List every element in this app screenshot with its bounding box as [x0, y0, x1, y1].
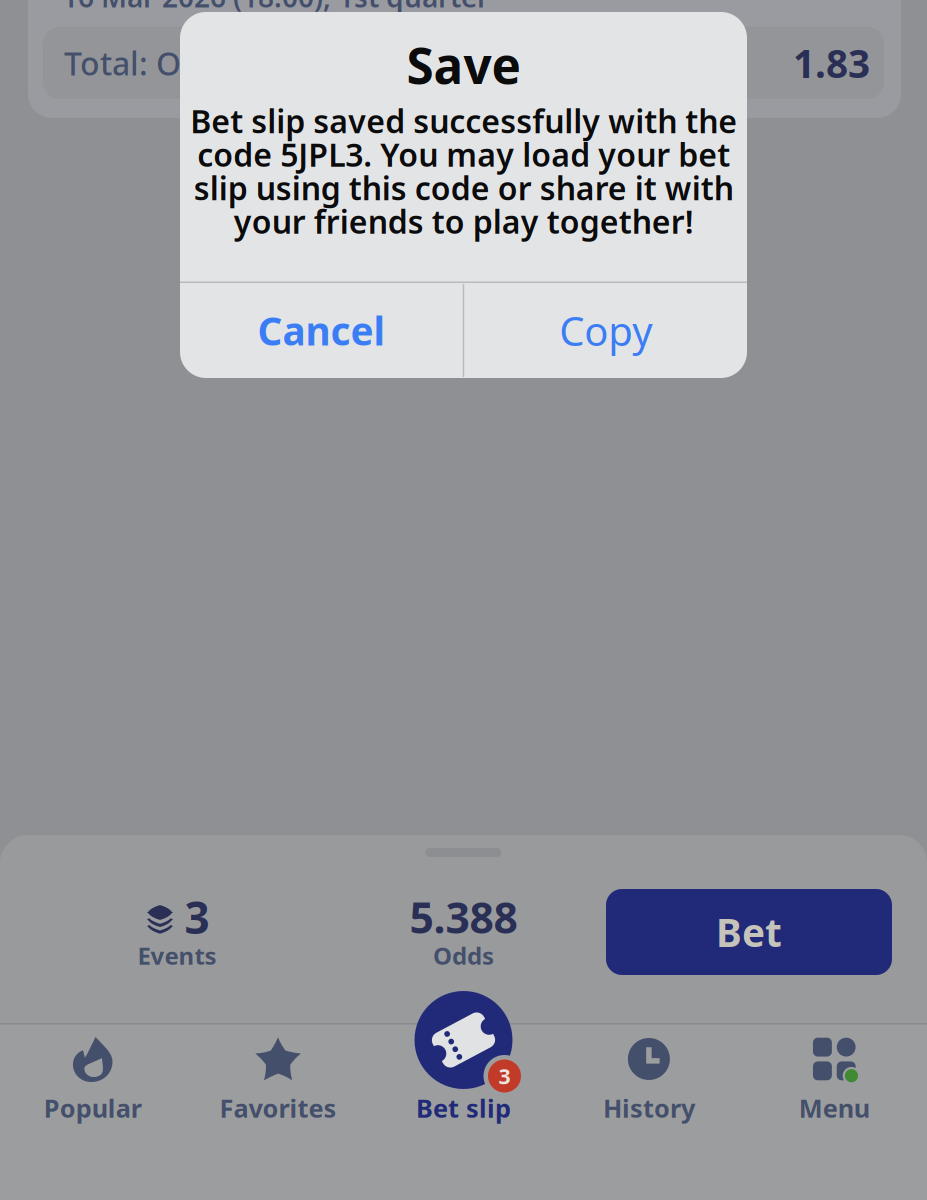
staticText: Menu: [799, 1091, 870, 1125]
button[interactable]: Cancel: [180, 283, 463, 378]
staticText: Odds: [433, 940, 494, 971]
staticText: Save: [406, 32, 520, 97]
button[interactable]: Bet: [606, 889, 892, 975]
button[interactable]: Popular: [0, 1023, 185, 1200]
button[interactable]: Menu: [742, 1023, 927, 1200]
staticText: Cancel: [257, 305, 385, 356]
staticText: 3: [184, 888, 209, 946]
button[interactable]: Bet slip: [371, 1023, 556, 1200]
button[interactable]: Favorites: [185, 1023, 371, 1200]
staticText: Bet: [716, 906, 782, 958]
button[interactable]: Copy: [464, 283, 747, 378]
staticText: Copy: [559, 304, 652, 357]
staticText: Bet slip: [416, 1091, 511, 1125]
staticText: 16 Mar 2026 (18:00), 1st quarter: [62, 0, 489, 15]
button[interactable]: Bet slip: [407, 984, 519, 1096]
staticText: 1.83: [793, 37, 870, 89]
staticText: Bet slip saved successfully with the cod…: [190, 99, 737, 242]
staticText: Popular: [44, 1091, 142, 1125]
staticText: 5.388: [409, 889, 517, 945]
staticText: History: [603, 1091, 695, 1125]
button[interactable]: History: [556, 1023, 742, 1200]
button[interactable]: Total: Over (161.5): [43, 27, 884, 99]
staticText: Events: [137, 940, 216, 971]
staticText: Total: Over (161.5): [64, 42, 339, 84]
staticText: Favorites: [220, 1091, 337, 1125]
staticText: 3: [498, 1062, 510, 1090]
